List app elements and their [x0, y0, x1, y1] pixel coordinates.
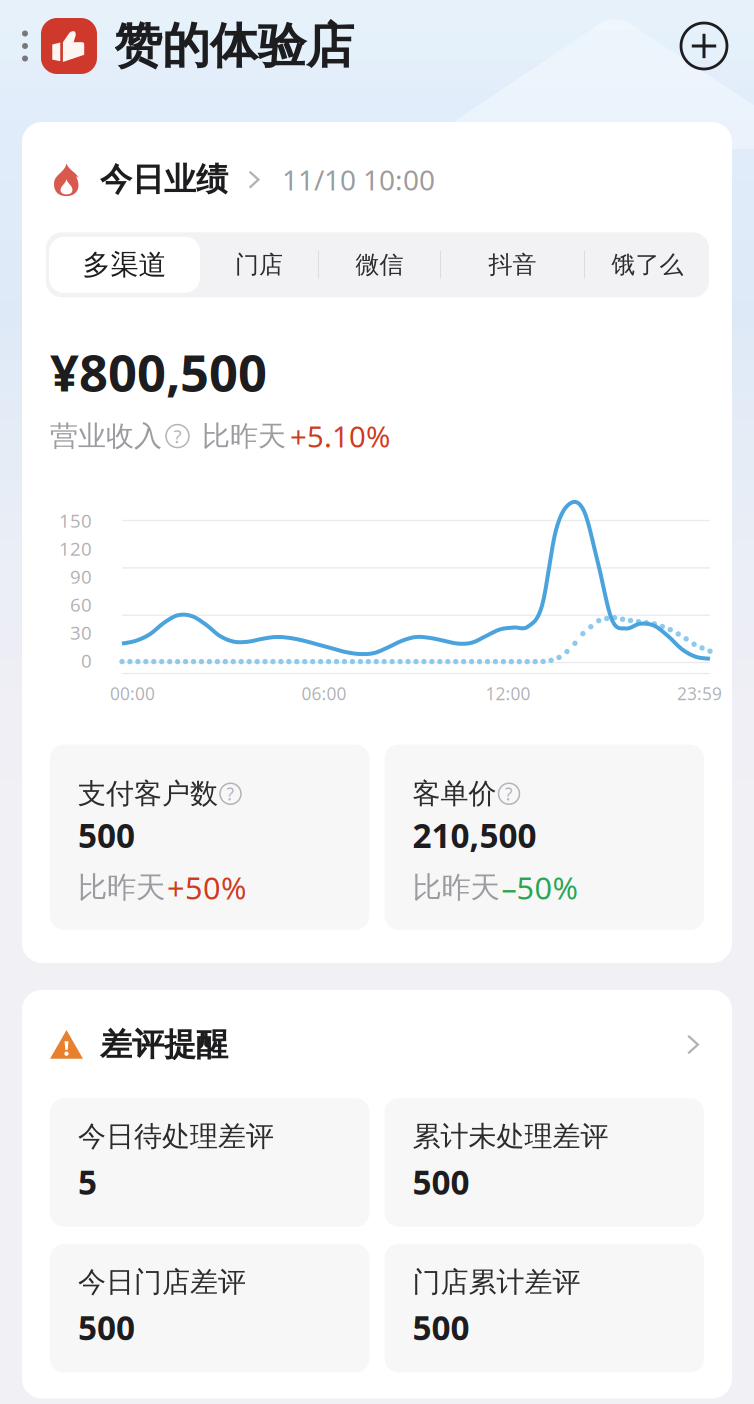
button[interactable]: 客单价: [384, 744, 704, 930]
staticText: 23:59: [677, 682, 722, 705]
staticText: ?: [505, 782, 513, 805]
staticText: 门店: [235, 250, 283, 280]
button[interactable]: 门店累计差评: [384, 1244, 704, 1373]
staticText: 11/10 10:00: [282, 161, 435, 198]
staticText: 支付客户数: [78, 776, 218, 811]
button[interactable]: 今日待处理差评: [50, 1098, 369, 1227]
staticText: 500: [412, 1160, 469, 1204]
staticText: ?: [173, 424, 181, 448]
staticText: 门店累计差评: [412, 1265, 580, 1299]
staticText: 06:00: [301, 682, 346, 705]
button[interactable]: 多渠道: [49, 237, 200, 293]
staticText: ?: [226, 782, 234, 805]
staticText: 今日业绩: [100, 160, 228, 199]
staticText: –50%: [501, 867, 577, 908]
staticText: ¥800,500: [50, 338, 267, 406]
button[interactable]: 抖音: [441, 237, 584, 293]
staticText: 饿了么: [611, 250, 683, 280]
staticText: 抖音: [488, 250, 536, 280]
staticText: 150: [59, 508, 92, 533]
staticText: 多渠道: [82, 248, 166, 282]
button[interactable]: 差评提醒: [50, 1025, 704, 1064]
button[interactable]: 门店: [200, 237, 318, 293]
button[interactable]: 累计未处理差评: [384, 1098, 704, 1227]
button[interactable]: 今日业绩: [50, 160, 704, 199]
staticText: 比昨天: [412, 869, 499, 905]
staticText: 5: [78, 1160, 97, 1204]
staticText: 60: [70, 592, 92, 617]
button[interactable]: 饿了么: [585, 237, 710, 293]
staticText: +50%: [167, 867, 246, 908]
staticText: 30: [70, 620, 92, 645]
button[interactable]: Store logo: [41, 18, 97, 74]
staticText: 500: [78, 813, 135, 857]
staticText: 210,500: [412, 813, 536, 857]
button[interactable]: 支付客户数: [50, 744, 369, 930]
staticText: 500: [412, 1305, 469, 1350]
button[interactable]: 今日门店差评: [50, 1244, 369, 1373]
staticText: 今日门店差评: [78, 1265, 246, 1299]
staticText: 12:00: [485, 682, 530, 705]
staticText: 营业收入: [50, 419, 162, 453]
staticText: 微信: [355, 250, 403, 280]
staticText: 00:00: [110, 682, 155, 705]
staticText: 90: [70, 564, 92, 589]
staticText: 比昨天: [78, 869, 165, 905]
staticText: 500: [78, 1305, 135, 1350]
staticText: 120: [59, 536, 92, 561]
button[interactable]: Add: [681, 23, 727, 69]
staticText: +5.10%: [290, 417, 390, 456]
staticText: 0: [81, 648, 92, 673]
staticText: 赞的体验店: [114, 16, 354, 75]
staticText: 今日待处理差评: [78, 1119, 274, 1154]
staticText: 差评提醒: [100, 1025, 228, 1064]
button[interactable]: 微信: [319, 237, 440, 293]
staticText: 客单价: [412, 776, 496, 811]
staticText: 比昨天: [202, 419, 286, 453]
staticText: 累计未处理差评: [412, 1119, 608, 1154]
